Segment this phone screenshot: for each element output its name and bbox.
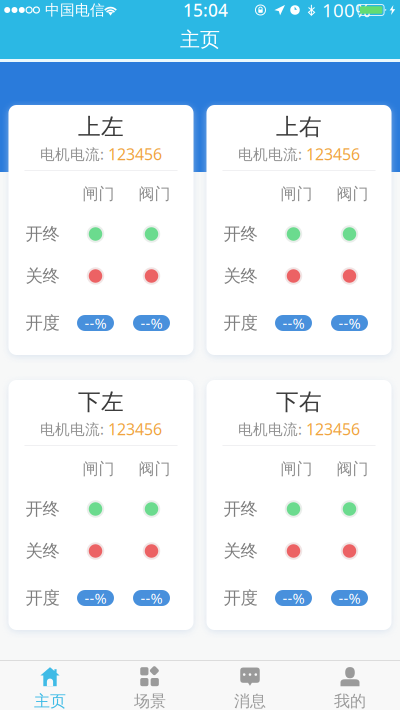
button[interactable]: --% [133,315,170,331]
staticText: 闸门 [82,459,114,479]
staticText: 123456 [302,143,360,165]
staticText: 关终 [223,265,257,287]
staticText: 主页 [34,691,66,710]
staticText: 阀门 [138,184,170,204]
staticText: --% [338,588,360,608]
button[interactable]: --% [275,315,312,331]
staticText: 闸门 [82,184,114,204]
staticText: 电机电流: [238,419,302,439]
staticText: 开度 [223,587,257,609]
staticText: --% [140,588,162,608]
staticText: --% [84,588,106,608]
button[interactable]: 我的 [300,661,400,710]
staticText: 主页 [180,27,220,52]
staticText: 关终 [223,540,257,562]
staticText: 关终 [25,540,59,562]
staticText: 电机电流: [40,144,104,164]
staticText: --% [282,588,304,608]
staticText: 123456 [104,143,162,165]
staticText: 15:04 [183,0,228,21]
staticText: 开终 [223,498,257,520]
button[interactable]: 主页 [0,661,100,710]
staticText: 开度 [25,312,59,334]
staticText: 消息 [234,691,266,710]
staticText: 阀门 [138,459,170,479]
button[interactable]: --% [275,590,312,606]
button[interactable]: --% [133,590,170,606]
staticText: --% [140,313,162,333]
staticText: 开终 [223,223,257,245]
button[interactable]: 消息 [200,661,300,710]
staticText: 电机电流: [40,419,104,439]
button[interactable]: 场景 [100,661,200,710]
staticText: 上右 [276,113,322,141]
staticText: 开终 [25,223,59,245]
staticText: --% [338,313,360,333]
button[interactable]: --% [77,590,114,606]
staticText: 电机电流: [238,144,302,164]
staticText: 闸门 [280,459,312,479]
staticText: 中国电信 [45,1,105,19]
staticText: 下左 [78,388,124,416]
staticText: 关终 [25,265,59,287]
staticText: 123456 [302,418,360,440]
staticText: 阀门 [336,184,368,204]
staticText: 开度 [25,587,59,609]
button[interactable]: --% [77,315,114,331]
staticText: 下右 [276,388,322,416]
staticText: 123456 [104,418,162,440]
staticText: 开度 [223,312,257,334]
staticText: 阀门 [336,459,368,479]
staticText: 开终 [25,498,59,520]
staticText: --% [282,313,304,333]
staticText: 闸门 [280,184,312,204]
staticText: 上左 [78,113,124,141]
staticText: 我的 [334,691,366,710]
staticText: --% [84,313,106,333]
staticText: 场景 [134,691,166,710]
button[interactable]: --% [331,315,368,331]
button[interactable]: --% [331,590,368,606]
staticText: 100% [322,0,371,22]
